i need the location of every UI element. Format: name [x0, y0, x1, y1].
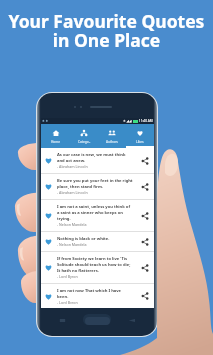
other: Like — [44, 292, 53, 301]
other: Share — [141, 292, 149, 300]
other: Back — [128, 317, 135, 324]
staticText: a saint as a sinner who keeps on — [57, 210, 123, 216]
staticText: I am not now That which I have — [57, 288, 122, 294]
button[interactable]: Like — [41, 284, 154, 308]
button[interactable]: Likes — [126, 124, 154, 148]
staticText: Catego.. — [78, 140, 91, 144]
other: Like — [44, 156, 53, 165]
other: Share — [141, 157, 149, 165]
other: Like — [44, 211, 53, 220]
button[interactable]: Catego.. — [70, 124, 98, 148]
staticText: Nothing is black or white. — [57, 236, 110, 242]
staticText: I am not a saint, unless you think of — [57, 204, 130, 210]
other: Recents — [59, 317, 66, 324]
staticText: trying. — [57, 216, 71, 222]
staticText: ✶ ◢◢ — [123, 119, 133, 123]
staticText: Authors — [106, 140, 118, 144]
other: Share — [141, 183, 149, 191]
button[interactable]: Like — [41, 252, 154, 283]
button[interactable]: Like — [41, 200, 154, 231]
staticText: As our case is new, we must think — [57, 152, 126, 158]
staticText: place, then stand firm. — [57, 184, 104, 190]
staticText: ✶ ✶ — [42, 119, 49, 123]
other: Share — [141, 212, 149, 220]
staticText: Likes — [136, 140, 144, 144]
button[interactable]: Like — [41, 148, 154, 173]
staticText: - Lord Byron — [57, 300, 78, 304]
button[interactable]: Like — [41, 174, 154, 199]
staticText: - Nelson Mandela — [57, 242, 87, 247]
staticText: - Lord Byron — [57, 274, 78, 279]
button[interactable]: Home — [41, 124, 70, 148]
staticText: been. — [57, 294, 69, 300]
other: Like — [44, 182, 53, 191]
button[interactable]: Authors — [98, 124, 126, 148]
staticText: If from Society we learn to live 'Tis — [57, 256, 128, 262]
staticText: It hath no flatterers. — [57, 268, 99, 274]
other: Share — [141, 238, 149, 246]
staticText: Solitude should teach us how to die; — [57, 262, 131, 268]
staticText: - Nelson Mandela — [57, 222, 87, 227]
staticText: - Abraham Lincoln — [57, 164, 88, 169]
other: Share — [141, 264, 149, 272]
staticText: - Abraham Lincoln — [57, 190, 88, 195]
staticText: 11:40 AM — [138, 119, 153, 123]
staticText: Your Favourite Quotes in One Place — [0, 9, 213, 52]
other: Like — [44, 237, 53, 246]
other: Like — [44, 263, 53, 272]
button[interactable]: Like — [41, 232, 154, 251]
staticText: Be sure you put your feet in the right — [57, 178, 133, 184]
staticText: and act anew. — [57, 158, 86, 164]
staticText: Home — [51, 140, 61, 144]
